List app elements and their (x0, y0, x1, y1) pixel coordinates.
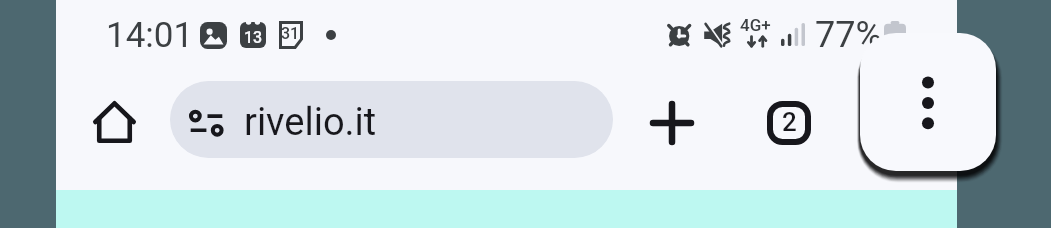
button[interactable]: Home (79, 87, 149, 157)
button[interactable]: New tab (637, 88, 707, 158)
staticText: 4G+ (740, 15, 771, 35)
staticText: rivelio.it (244, 100, 377, 145)
staticText: 2 (782, 107, 797, 137)
button[interactable]: Switch tabs, 2 open (754, 88, 824, 158)
staticText: 77% (815, 14, 882, 56)
staticText: 14:01 (106, 15, 194, 56)
button[interactable]: More options (860, 33, 996, 171)
staticText: 31 (281, 24, 300, 43)
button[interactable]: rivelio.it (170, 81, 613, 158)
staticText: 13 (244, 28, 263, 47)
